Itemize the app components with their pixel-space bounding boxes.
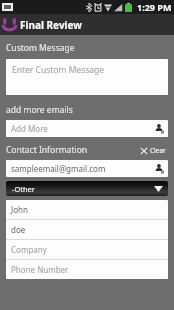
button[interactable]: Enter Custom Message (6, 59, 168, 95)
staticText: 1:29 PM (137, 1, 172, 13)
button[interactable]: Add More (6, 120, 150, 137)
staticText: Phone Number (11, 264, 69, 275)
staticText: -Other (12, 184, 35, 194)
button[interactable]: Clear (138, 145, 168, 156)
button[interactable]: sampleemail@gmail.com (6, 160, 150, 177)
button[interactable]: Company (6, 240, 168, 259)
staticText: doe (11, 224, 26, 235)
button[interactable]: Pick contact for extra email (150, 120, 168, 137)
staticText: Company (11, 244, 47, 255)
staticText: Final Review (20, 18, 82, 32)
staticText: Enter Custom Message (12, 64, 105, 76)
button[interactable]: -Other (6, 181, 168, 196)
button[interactable]: Pick contact (150, 160, 168, 177)
staticText: add more emails (6, 104, 73, 116)
staticText: Clear (150, 146, 166, 155)
button[interactable]: doe (6, 220, 168, 239)
staticText: Add More (11, 123, 48, 134)
staticText: Custom Message (6, 42, 75, 54)
button[interactable]: John (6, 200, 168, 219)
staticText: sampleemail@gmail.com (11, 163, 106, 174)
staticText: John (11, 204, 28, 215)
staticText: Contact Information (6, 144, 88, 156)
button[interactable]: Phone Number (6, 260, 168, 279)
